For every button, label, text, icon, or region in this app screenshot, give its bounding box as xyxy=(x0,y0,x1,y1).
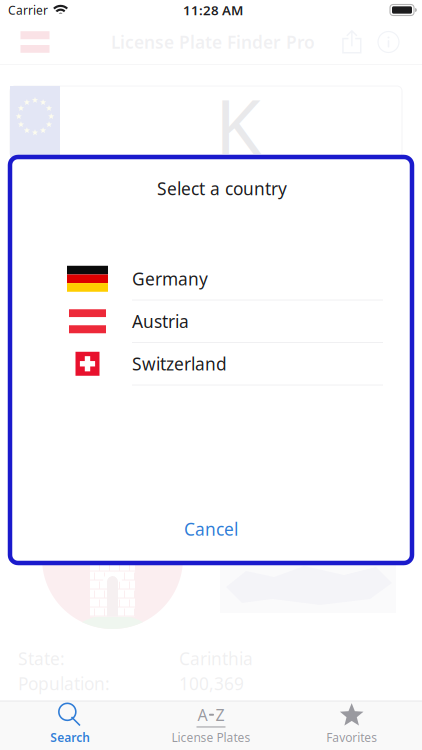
button[interactable]: Germany xyxy=(67,258,383,300)
button[interactable]: Share xyxy=(333,20,371,64)
staticText: Switzerland xyxy=(132,352,227,375)
staticText: License Plate Finder Pro xyxy=(111,30,315,53)
button[interactable]: Favorites xyxy=(281,701,422,750)
staticText: 100,369 xyxy=(179,672,244,695)
staticText: K xyxy=(215,75,261,175)
button[interactable]: A xyxy=(141,701,281,750)
staticText: Germany xyxy=(132,267,208,290)
staticText: State: xyxy=(18,647,65,670)
staticText: Favorites xyxy=(326,729,377,745)
button[interactable]: Cancel xyxy=(10,509,412,549)
staticText: Carinthia xyxy=(179,647,253,670)
staticText: A xyxy=(197,704,207,725)
staticText: License Plates xyxy=(171,729,250,745)
staticText: 11:28 AM xyxy=(183,1,243,19)
staticText: Cancel xyxy=(184,517,238,540)
button[interactable]: Search xyxy=(0,701,141,750)
button[interactable]: Change country xyxy=(13,20,57,64)
staticText: Austria xyxy=(132,310,189,333)
staticText: Carrier xyxy=(8,2,48,18)
button[interactable]: Switzerland xyxy=(67,343,383,385)
staticText: Z xyxy=(215,704,224,725)
staticText: Search xyxy=(50,729,90,745)
staticText: Population: xyxy=(18,672,110,695)
staticText: Select a country xyxy=(157,177,287,200)
button[interactable]: Austria xyxy=(67,300,383,343)
